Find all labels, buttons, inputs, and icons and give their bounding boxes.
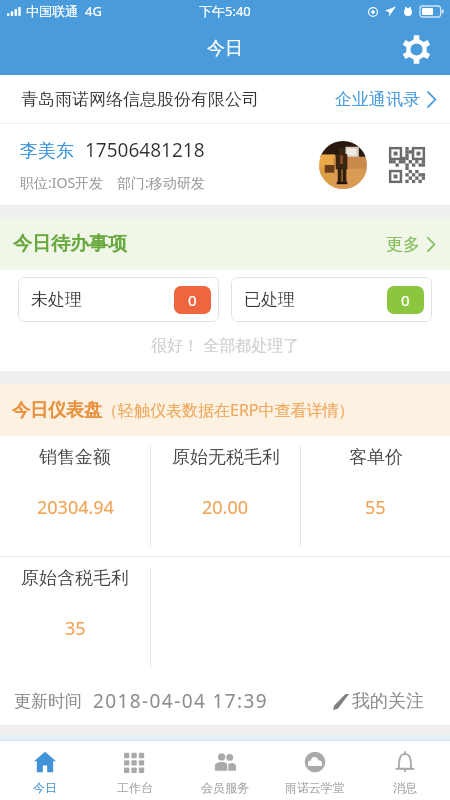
staticText: 今日 [207, 37, 243, 60]
staticText: 很好！ 全部都处理了 [151, 334, 300, 356]
staticText: 4G [85, 2, 102, 20]
button[interactable]: 会员服务 [180, 741, 270, 800]
staticText: 会员服务 [201, 780, 249, 795]
staticText: 0 [401, 290, 410, 310]
button[interactable]: 原始无税毛利 [151, 436, 300, 556]
staticText: 更新时间 [14, 691, 82, 712]
button[interactable]: 消息 [360, 741, 450, 800]
staticText: 今日仪表盘 [12, 399, 102, 422]
staticText: 17506481218 [85, 137, 205, 163]
staticText: 已处理 [244, 289, 295, 310]
staticText: 今日 [33, 780, 57, 795]
staticText: 原始含税毛利 [21, 567, 129, 590]
staticText: 雨诺云学堂 [285, 780, 345, 795]
staticText: 青岛雨诺网络信息股份有限公司 [21, 89, 259, 110]
button[interactable]: 销售金额 [0, 436, 150, 556]
staticText: 今日待办事项 [13, 232, 127, 256]
button[interactable]: Avatar [319, 141, 367, 189]
button[interactable]: Settings [394, 27, 438, 71]
staticText: 20304.94 [37, 495, 114, 520]
staticText: 2018-04-04 17:39 [93, 688, 269, 714]
staticText: 55 [365, 495, 386, 520]
button[interactable]: 客单价 [301, 436, 450, 556]
button[interactable]: 今日 [0, 741, 90, 800]
staticText: 消息 [393, 780, 417, 795]
staticText: 未处理 [31, 289, 82, 310]
staticText: 销售金额 [39, 446, 111, 469]
staticText: 下午5:40 [199, 2, 251, 20]
staticText: 客单价 [349, 446, 403, 469]
staticText: 35 [65, 616, 86, 641]
staticText: 职位:IOS开发 [20, 173, 104, 192]
button[interactable]: 我的关注 [333, 684, 424, 719]
staticText: 部门:移动研发 [117, 173, 205, 192]
staticText: 更多 [386, 234, 420, 255]
staticText: （轻触仪表数据在ERP中查看详情） [102, 399, 355, 421]
staticText: 李美东 [20, 140, 74, 163]
button[interactable]: 雨诺云学堂 [270, 741, 360, 800]
button[interactable]: 已处理 [231, 277, 432, 322]
button[interactable]: QR code [388, 146, 426, 184]
button[interactable]: 工作台 [90, 741, 180, 800]
staticText: 工作台 [117, 780, 153, 795]
staticText: 0 [188, 290, 197, 310]
staticText: 企业通讯录 [335, 89, 420, 110]
button[interactable]: 未处理 [18, 277, 219, 322]
staticText: 我的关注 [352, 690, 424, 713]
staticText: 中国联通 [26, 3, 78, 19]
button[interactable]: 今日待办事项 [0, 218, 450, 270]
staticText: 原始无税毛利 [172, 446, 280, 469]
button[interactable]: 原始含税毛利 [0, 557, 150, 677]
button[interactable]: 企业通讯录 [327, 79, 450, 120]
staticText: 20.00 [202, 495, 249, 520]
